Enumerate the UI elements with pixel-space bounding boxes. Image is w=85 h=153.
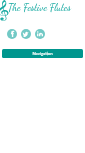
staticText: Navigation xyxy=(32,51,53,56)
staticText: The Festive Flutes xyxy=(8,2,71,14)
button[interactable]: Navigation xyxy=(2,49,83,58)
button[interactable]: Facebook xyxy=(7,29,17,39)
button[interactable]: LinkedIn xyxy=(35,29,45,39)
staticText: 𝄞 xyxy=(0,0,10,21)
button[interactable]: Twitter xyxy=(21,29,31,39)
